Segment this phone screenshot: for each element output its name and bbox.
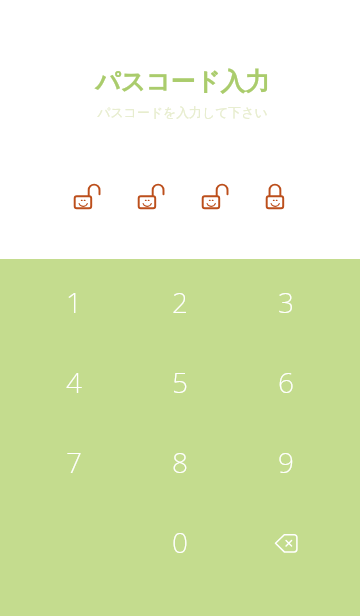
other: Digit 2 empty [136, 180, 200, 212]
other: Digit 1 empty [72, 180, 136, 212]
staticText: 4 [66, 363, 82, 401]
staticText: パスコードを入力して下さい [97, 105, 268, 121]
button[interactable]: 6 [233, 342, 339, 422]
button[interactable]: 2 [127, 262, 233, 342]
staticText: 3 [278, 283, 294, 321]
other: Digit 3 empty [200, 180, 264, 212]
button[interactable]: 7 [21, 422, 127, 502]
button[interactable]: 0 [127, 502, 233, 582]
staticText: 7 [66, 443, 82, 481]
staticText: 9 [278, 443, 294, 481]
staticText: 2 [172, 283, 188, 321]
staticText: パスコード入力 [95, 66, 270, 97]
button[interactable]: 5 [127, 342, 233, 422]
button[interactable]: 9 [233, 422, 339, 502]
staticText: 5 [172, 363, 188, 401]
staticText: 1 [66, 283, 82, 321]
button[interactable]: 1 [21, 262, 127, 342]
button[interactable]: Delete [233, 502, 339, 582]
staticText: 6 [278, 363, 294, 401]
button[interactable]: 3 [233, 262, 339, 342]
staticText: 8 [172, 443, 188, 481]
button[interactable]: 8 [127, 422, 233, 502]
staticText: 0 [172, 523, 188, 561]
other: Digit 4 entered [264, 180, 328, 212]
button[interactable]: 4 [21, 342, 127, 422]
